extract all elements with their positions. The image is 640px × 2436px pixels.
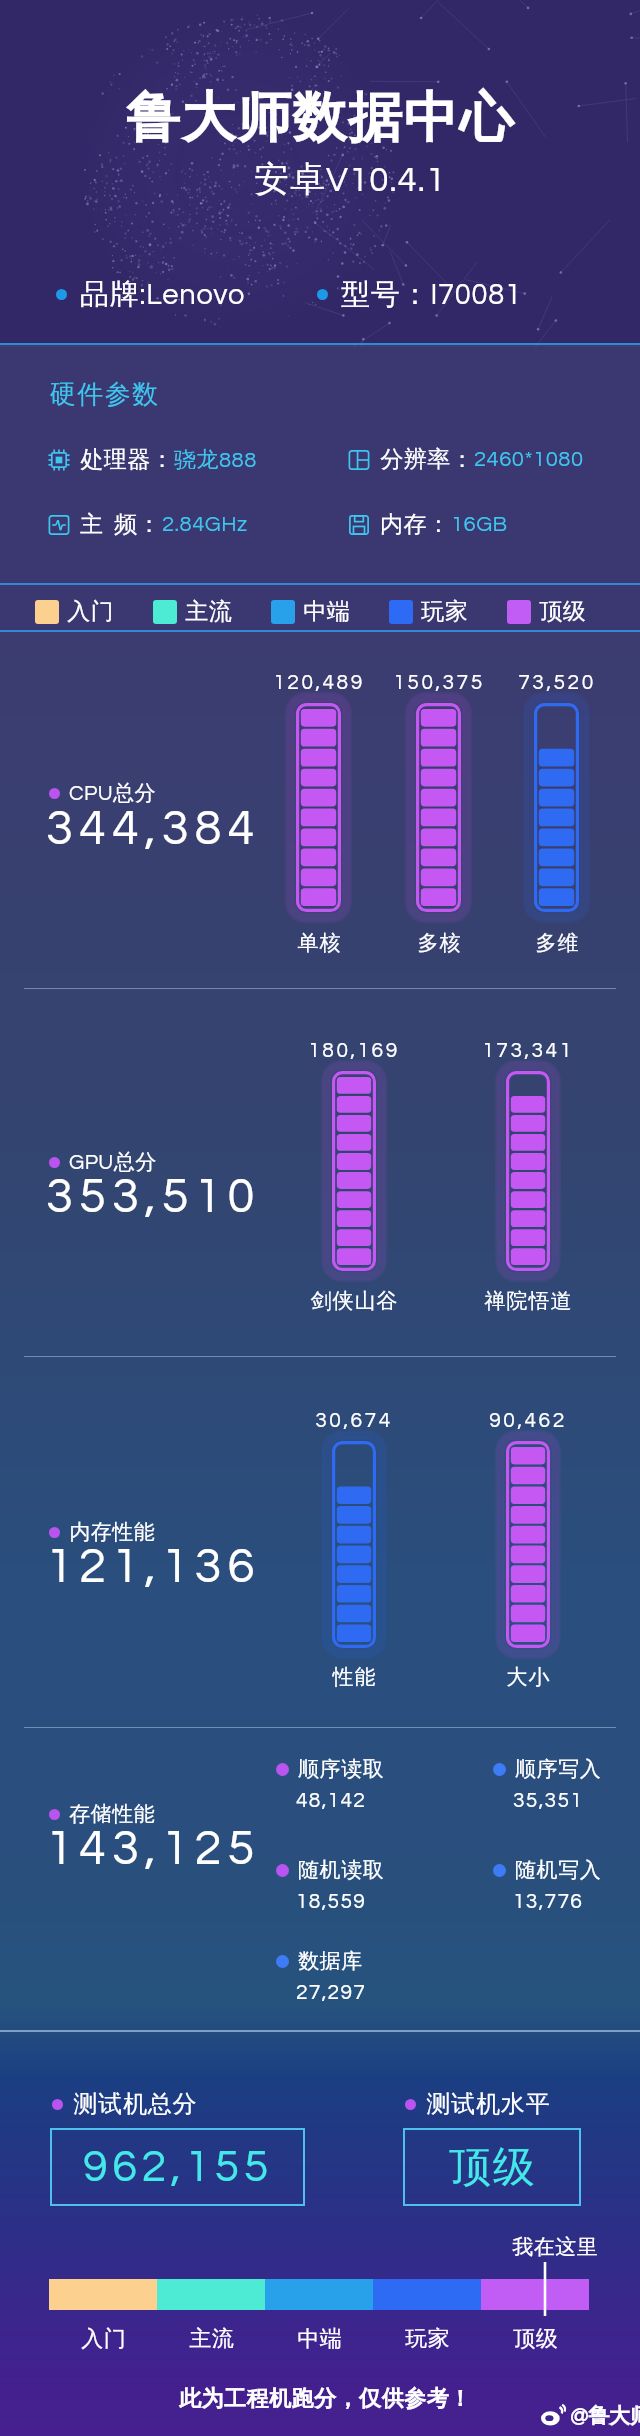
staticText: 处理器：	[80, 445, 174, 474]
staticText: 安卓V10.4.1	[254, 157, 447, 201]
staticText: 主流	[185, 597, 232, 626]
staticText: 顺序写入	[515, 1756, 602, 1782]
staticText: 344,384	[46, 804, 261, 854]
staticText: @鲁大师	[570, 2403, 640, 2429]
staticText: 内存：	[380, 510, 451, 539]
staticText: 测试机总分	[73, 2089, 197, 2119]
staticText: 35,351	[513, 1790, 584, 1812]
button[interactable]: Weibo @鲁大师	[541, 2403, 640, 2429]
staticText: 180,169	[308, 1040, 400, 1062]
staticText: 剑侠山谷	[310, 1288, 398, 1314]
staticText: 品牌:Lenovo	[80, 276, 246, 313]
staticText: 玩家	[405, 2325, 450, 2353]
staticText: 硬件参数	[49, 378, 159, 411]
staticText: 顶级	[539, 597, 586, 626]
staticText: 120,489	[273, 672, 365, 694]
staticText: GPU总分	[69, 1149, 157, 1175]
staticText: 173,341	[482, 1040, 574, 1062]
staticText: 73,520	[518, 672, 596, 694]
staticText: 962,155	[83, 2144, 273, 2190]
staticText: 150,375	[393, 672, 485, 694]
staticText: 分辨率：	[380, 445, 474, 474]
staticText: 性能	[332, 1664, 376, 1690]
staticText: 主 频：	[80, 510, 162, 539]
staticText: 27,297	[296, 1982, 367, 2004]
staticText: 此为工程机跑分，仅供参考！	[179, 2385, 472, 2413]
staticText: 骁龙888	[174, 446, 257, 474]
staticText: 入门	[81, 2325, 126, 2353]
staticText: 顶级	[513, 2325, 558, 2353]
button[interactable]: 顺序读取	[276, 1756, 385, 1782]
staticText: 2.84GHz	[162, 513, 248, 536]
staticText: 90,462	[489, 1410, 567, 1432]
button[interactable]: 型号：I70081	[317, 276, 522, 313]
staticText: 顶级	[448, 2141, 536, 2194]
staticText: 16GB	[451, 513, 508, 536]
button[interactable]: 数据库	[276, 1948, 363, 1974]
staticText: 大小	[506, 1664, 550, 1690]
staticText: 多核	[417, 930, 461, 956]
staticText: 353,510	[46, 1172, 261, 1222]
staticText: 中端	[297, 2325, 342, 2353]
staticText: 多维	[535, 930, 579, 956]
staticText: 18,559	[296, 1891, 367, 1913]
staticText: 顺序读取	[298, 1756, 385, 1782]
staticText: 30,674	[315, 1410, 393, 1432]
staticText: 鲁大师数据中心	[126, 84, 515, 152]
staticText: 2460*1080	[474, 448, 584, 471]
staticText: 入门	[67, 597, 114, 626]
staticText: 存储性能	[69, 1801, 155, 1827]
staticText: 型号：I70081	[341, 276, 522, 313]
staticText: 禅院悟道	[484, 1288, 572, 1314]
button[interactable]: 顺序写入	[493, 1756, 602, 1782]
button[interactable]: 随机写入	[493, 1857, 602, 1883]
button[interactable]: 品牌:Lenovo	[56, 276, 246, 313]
staticText: 中端	[303, 597, 350, 626]
staticText: 13,776	[513, 1891, 584, 1913]
staticText: 单核	[297, 930, 341, 956]
staticText: 我在这里	[512, 2234, 598, 2260]
staticText: 测试机水平	[426, 2089, 550, 2119]
staticText: 随机读取	[298, 1857, 385, 1883]
staticText: CPU总分	[69, 780, 157, 806]
staticText: 内存性能	[69, 1519, 155, 1545]
staticText: 143,125	[46, 1824, 261, 1874]
staticText: 数据库	[298, 1948, 363, 1974]
staticText: 随机写入	[515, 1857, 602, 1883]
staticText: 玩家	[421, 597, 468, 626]
staticText: 主流	[189, 2325, 234, 2353]
staticText: 121,136	[46, 1542, 261, 1592]
button[interactable]: 随机读取	[276, 1857, 385, 1883]
staticText: 48,142	[296, 1790, 367, 1812]
